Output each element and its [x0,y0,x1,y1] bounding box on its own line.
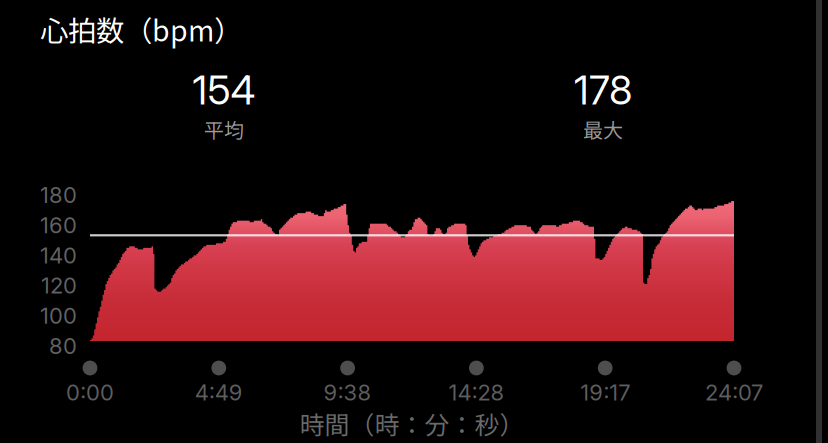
staticText: 最大 [583,114,623,143]
staticText: 120 [41,272,77,299]
staticText: 80 [49,333,77,359]
staticText: 178 [574,66,632,114]
staticText: 140 [40,242,77,269]
staticText: 心拍数（bpm） [40,8,242,50]
staticText: 平均 [204,114,244,143]
staticText: 24:07 [705,379,763,406]
staticText: 180 [40,182,77,208]
staticText: 14:28 [448,379,504,406]
staticText: 19:17 [580,379,630,406]
staticText: 100 [40,302,77,329]
staticText: 0:00 [66,379,114,406]
staticText: 154 [192,66,255,114]
staticText: 9:38 [324,379,372,406]
staticText: 4:49 [195,379,243,406]
staticText: 時間（時：分：秒） [299,405,524,441]
staticText: 160 [40,212,77,238]
